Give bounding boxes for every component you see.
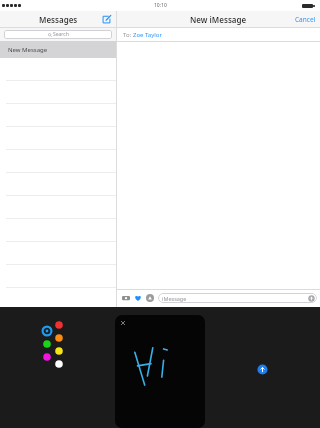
button[interactable]: Camera [120,292,132,304]
button[interactable]: Magenta color [42,352,52,362]
staticText: Messages [39,14,78,25]
button[interactable]: New Message [0,41,116,58]
staticText: 10:10 [154,2,167,9]
staticText: New iMessage [190,14,247,25]
button[interactable]: Send [257,364,268,375]
button[interactable]: Orange color [54,333,64,343]
button[interactable]: Close [119,319,126,326]
staticText: iMessage [162,295,187,302]
button[interactable]: Green color [42,339,52,349]
staticText: To: [123,31,133,39]
button[interactable]: Search [4,30,112,39]
staticText: Search [53,31,69,38]
button[interactable]: Yellow color [54,346,64,356]
button[interactable]: Red color [54,320,64,330]
button[interactable]: To: [117,28,320,41]
button[interactable]: iMessage [158,293,317,303]
staticText: Zoe Taylor [133,31,162,39]
button[interactable]: Send [308,295,315,302]
button[interactable]: Cancel [295,15,316,24]
button[interactable]: Compose new message [100,13,112,25]
button[interactable]: Apps [144,292,156,304]
button[interactable]: White color [54,359,64,369]
button[interactable]: Digital Touch [132,292,144,304]
staticText: New Message [8,46,48,54]
staticText: Cancel [295,15,316,24]
button[interactable]: Blue color, selected [42,326,52,336]
button[interactable]: Close [115,315,205,428]
